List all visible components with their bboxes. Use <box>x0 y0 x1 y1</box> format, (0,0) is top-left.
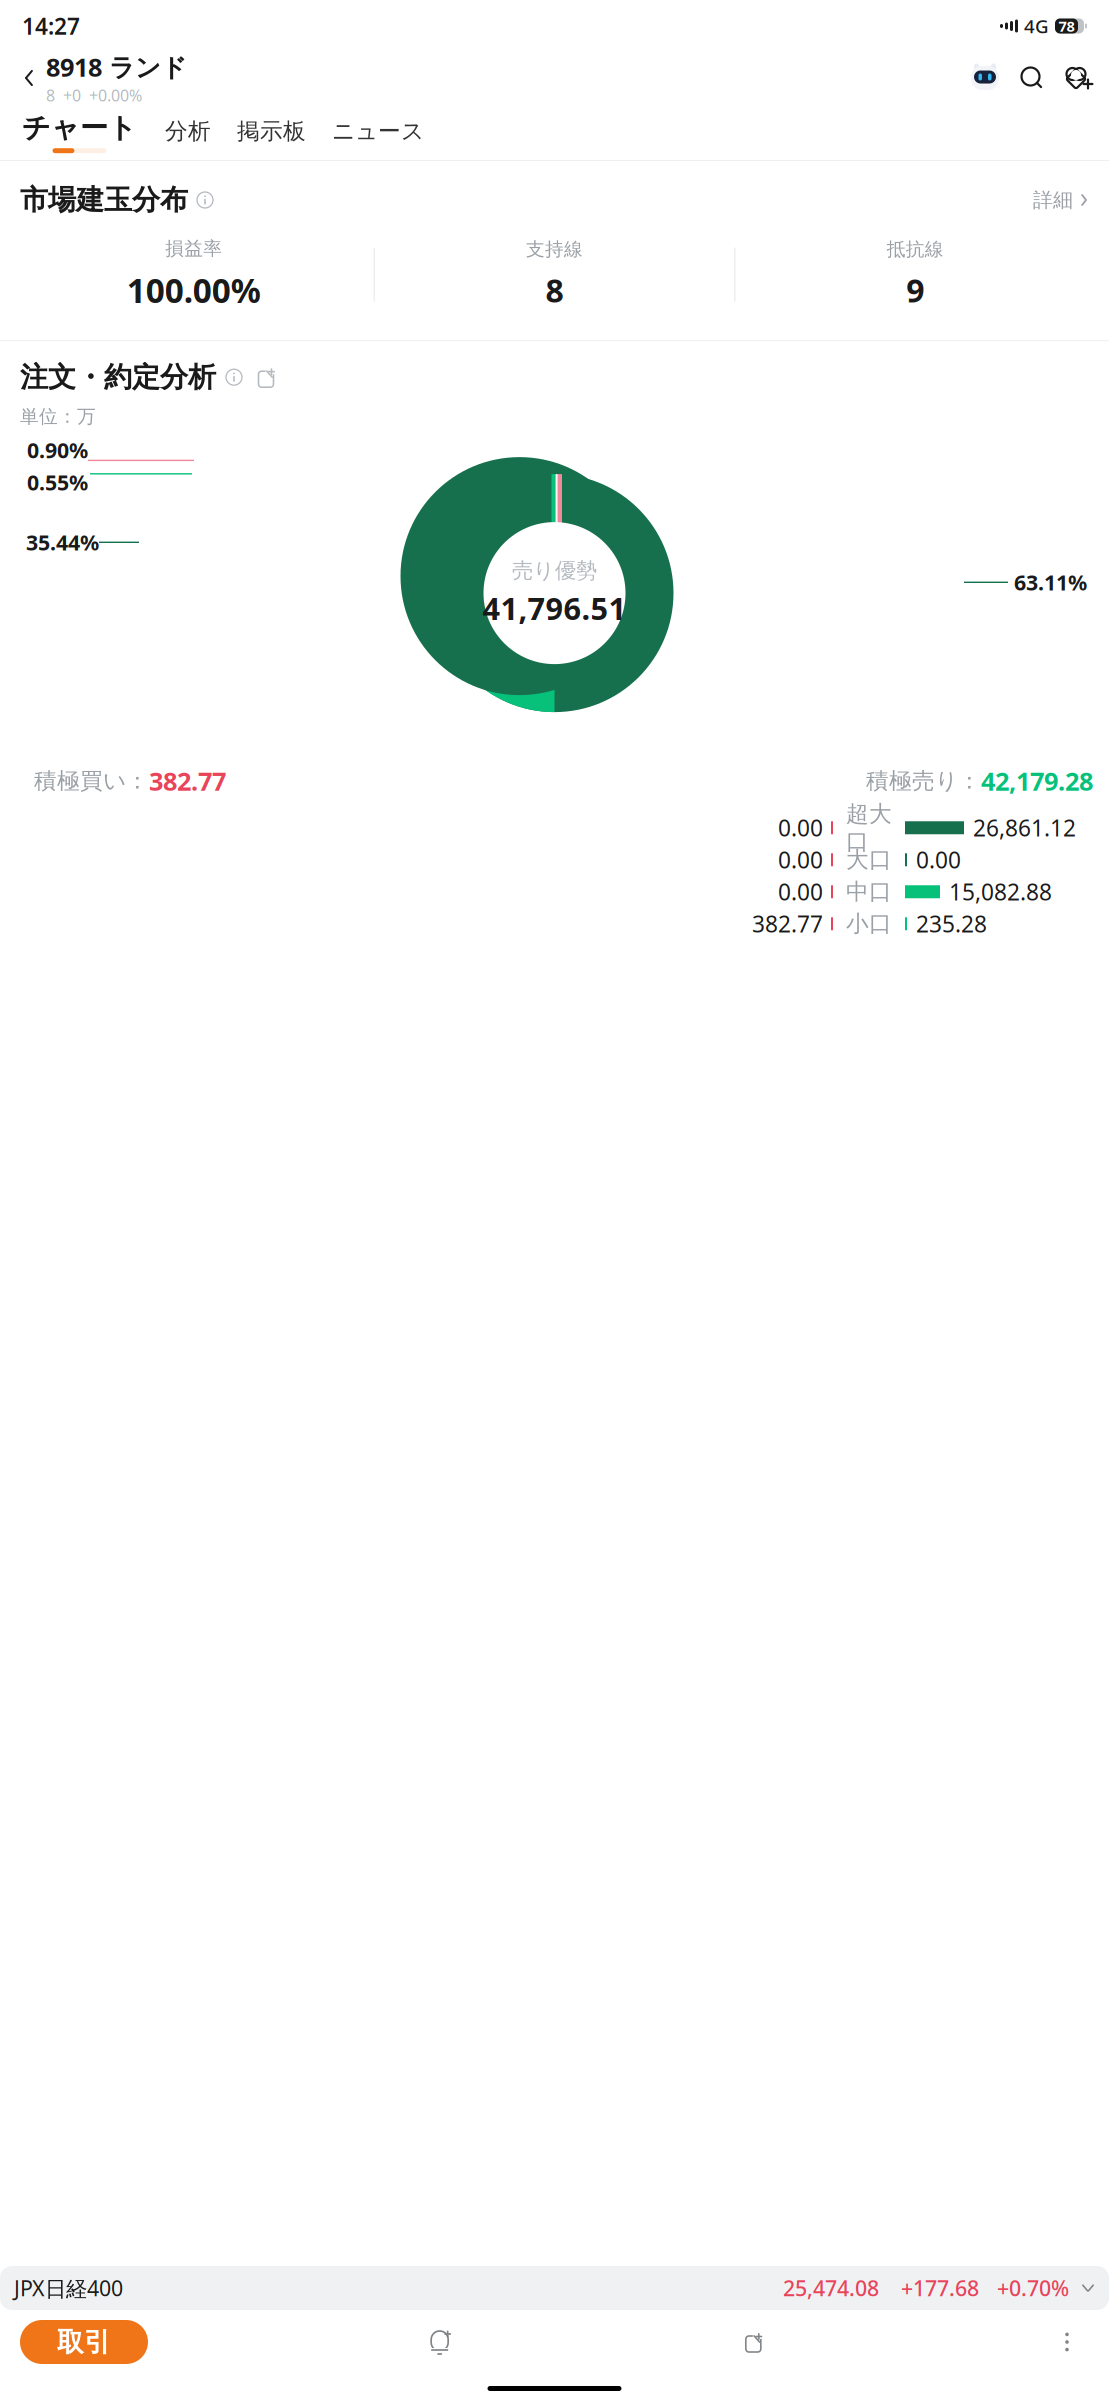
button[interactable]: Back <box>12 56 46 100</box>
staticText: JPX日経400 <box>14 2274 123 2302</box>
staticText: 14:27 <box>22 11 80 41</box>
staticText: 0.90% <box>27 436 88 464</box>
staticText: 25,474.08 <box>783 2274 879 2302</box>
button[interactable]: 取引 <box>20 2320 148 2364</box>
button[interactable]: ニュース <box>330 117 426 153</box>
staticText: 26,861.12 <box>973 813 1076 843</box>
staticText: 35.44% <box>26 528 99 556</box>
staticText: 積極買い： <box>34 767 149 795</box>
button[interactable]: More options <box>1045 2320 1089 2364</box>
staticText: 15,082.88 <box>949 877 1052 907</box>
button[interactable]: Search <box>1015 58 1049 98</box>
staticText: 損益率 <box>165 237 222 260</box>
staticText: 0.00 <box>916 845 961 875</box>
staticText: 小口 <box>846 910 892 938</box>
staticText: 0.00 <box>778 845 823 875</box>
staticText: 4G <box>1024 14 1049 38</box>
staticText: 0.00 <box>778 813 823 843</box>
staticText: 詳細 <box>1033 188 1073 212</box>
staticText: 市場建玉分布 <box>20 183 188 217</box>
button[interactable]: Price alert <box>418 2320 462 2364</box>
staticText: 0.00 <box>778 877 823 907</box>
staticText: 支持線 <box>526 238 583 261</box>
staticText: 8918 ランド <box>46 50 187 84</box>
button[interactable]: AI assistant <box>967 58 1003 98</box>
staticText: 8 +0 +0.00% <box>46 85 142 106</box>
button[interactable]: 掲示板 <box>235 117 308 153</box>
button[interactable]: 分析 <box>163 117 213 153</box>
button[interactable]: Share <box>255 365 277 389</box>
staticText: 9 <box>906 269 924 311</box>
staticText: 63.11% <box>1014 568 1087 596</box>
staticText: 売り優勢 <box>512 558 597 584</box>
staticText: 8 <box>545 269 563 311</box>
button[interactable]: Share <box>731 2320 775 2364</box>
button[interactable]: チャート <box>18 111 141 153</box>
staticText: 積極売り： <box>866 767 981 795</box>
staticText: +0.70% <box>997 2274 1069 2302</box>
staticText: 大口 <box>846 846 892 874</box>
button[interactable]: Add to watchlist <box>1061 58 1097 98</box>
staticText: 78 <box>1058 16 1074 36</box>
staticText: 42,179.28 <box>981 764 1093 798</box>
staticText: 100.00% <box>127 268 261 312</box>
staticText: 注文・約定分析 <box>20 360 216 394</box>
staticText: 単位：万 <box>20 405 96 428</box>
staticText: 235.28 <box>916 909 987 939</box>
staticText: 取引 <box>57 2326 111 2358</box>
staticText: 382.77 <box>149 764 226 798</box>
button[interactable]: JPX日経400 <box>0 2266 1109 2310</box>
staticText: 抵抗線 <box>887 238 944 261</box>
staticText: 382.77 <box>752 909 823 939</box>
staticText: 分析 <box>165 117 211 145</box>
staticText: 0.55% <box>27 468 88 496</box>
staticText: 中口 <box>846 878 892 906</box>
button[interactable]: 詳細 <box>1033 188 1089 212</box>
staticText: ニュース <box>332 117 424 145</box>
staticText: 41,796.51 <box>482 588 626 629</box>
staticText: +177.68 <box>901 2274 979 2302</box>
staticText: 掲示板 <box>237 117 306 145</box>
staticText: チャート <box>22 111 137 145</box>
staticText: 超大口 <box>846 800 892 856</box>
